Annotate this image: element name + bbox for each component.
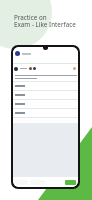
button[interactable] bbox=[13, 91, 78, 99]
button[interactable] bbox=[65, 180, 76, 185]
button[interactable] bbox=[13, 109, 78, 117]
button[interactable] bbox=[13, 100, 78, 108]
button[interactable] bbox=[13, 82, 78, 90]
staticText: Practice on Exam - Like Interface bbox=[14, 13, 76, 29]
